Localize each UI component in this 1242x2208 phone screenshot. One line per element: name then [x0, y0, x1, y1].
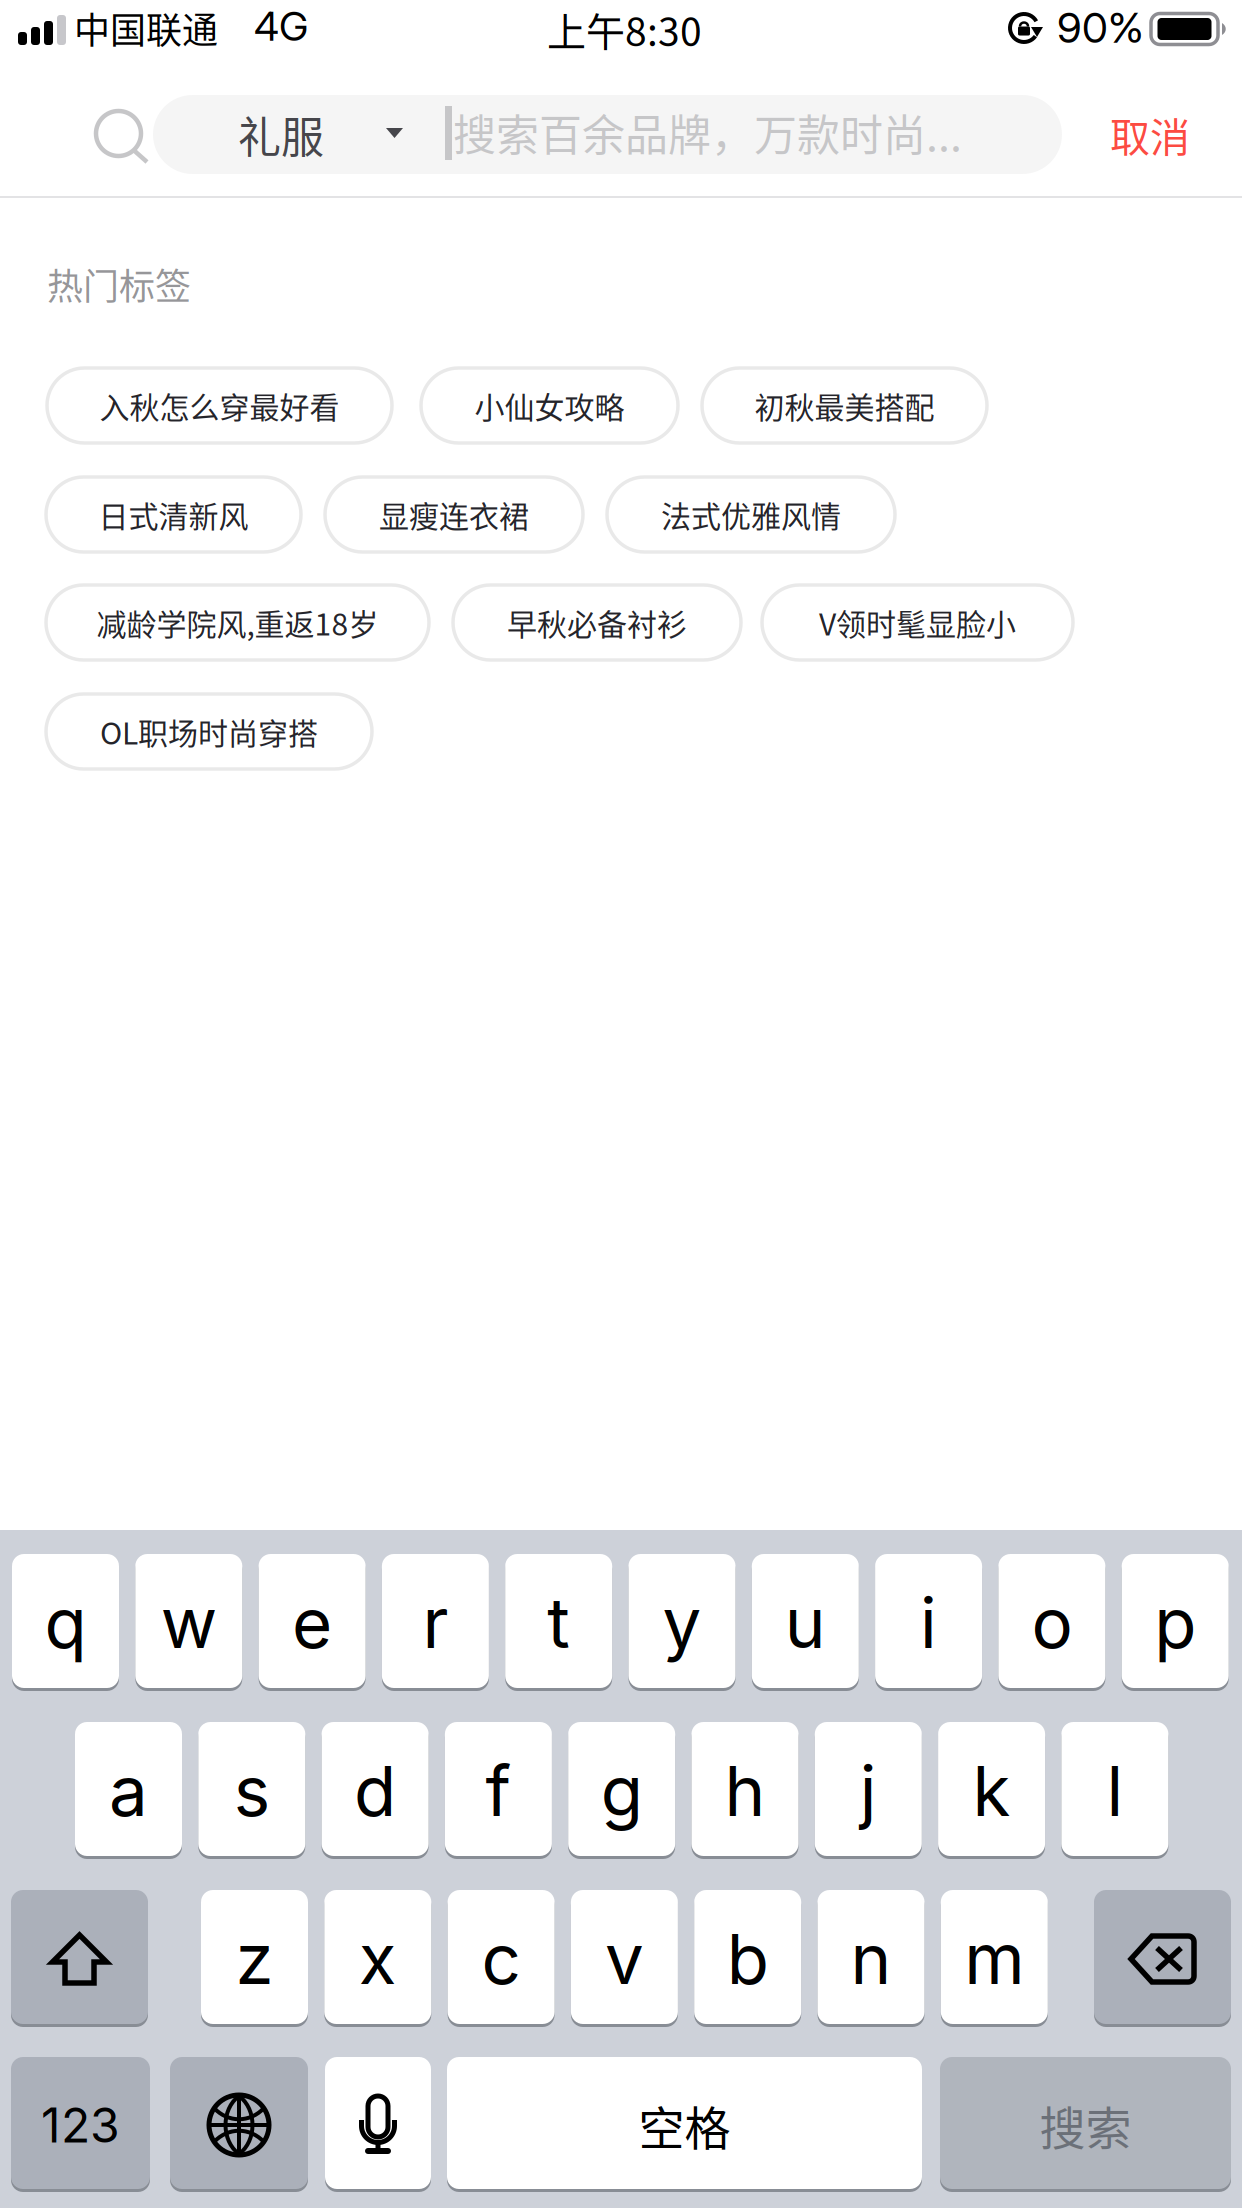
button[interactable]: Dictation [325, 2057, 431, 2193]
button[interactable]: x [324, 1890, 431, 2028]
button[interactable]: g [568, 1722, 675, 1860]
staticText: l [1106, 1749, 1123, 1833]
staticText: s [234, 1749, 270, 1833]
staticText: 初秋最美搭配 [754, 384, 934, 427]
button[interactable]: 显瘦连衣裙 [325, 477, 583, 552]
staticText: 显瘦连衣裙 [379, 493, 529, 536]
staticText: 小仙女攻略 [474, 384, 624, 427]
staticText: c [482, 1917, 521, 2001]
staticText: o [1031, 1581, 1072, 1665]
button[interactable]: 搜索 [940, 2057, 1231, 2193]
button[interactable]: 日式清新风 [46, 477, 301, 552]
button[interactable]: b [694, 1890, 801, 2028]
button[interactable]: 早秋必备衬衫 [453, 585, 741, 660]
staticText: 取消 [1110, 105, 1190, 163]
button[interactable]: a [75, 1722, 182, 1860]
staticText: 90% [1057, 2, 1144, 53]
button[interactable]: s [198, 1722, 305, 1860]
button[interactable]: y [628, 1554, 735, 1692]
button[interactable]: c [448, 1890, 555, 2028]
staticText: 减龄学院风,重返18岁 [96, 601, 378, 644]
button[interactable]: 小仙女攻略 [421, 368, 678, 443]
button[interactable]: o [998, 1554, 1105, 1692]
staticText: 热门标签 [47, 258, 191, 310]
button[interactable]: r [382, 1554, 489, 1692]
button[interactable]: Search [96, 107, 158, 177]
button[interactable]: 入秋怎么穿最好看 [47, 368, 392, 443]
staticText: 搜索百余品牌，万款时尚... [453, 101, 962, 163]
staticText: 空格 [638, 2092, 730, 2158]
staticText: e [292, 1581, 332, 1665]
staticText: n [850, 1917, 891, 2001]
staticText: w [161, 1581, 217, 1665]
button[interactable]: 初秋最美搭配 [702, 368, 987, 443]
staticText: b [727, 1917, 769, 2001]
staticText: r [422, 1581, 448, 1665]
staticText: x [359, 1917, 397, 2001]
staticText: 法式优雅风情 [661, 493, 841, 536]
button[interactable]: 礼服 [153, 95, 1062, 174]
button[interactable]: t [505, 1554, 612, 1692]
staticText: 搜索 [1039, 2092, 1131, 2158]
staticText: v [605, 1917, 644, 2001]
button[interactable]: OL职场时尚穿搭 [46, 694, 372, 769]
staticText: a [109, 1749, 148, 1833]
staticText: m [964, 1917, 1024, 2001]
button[interactable]: m [941, 1890, 1048, 2028]
button[interactable]: d [322, 1722, 429, 1860]
button[interactable]: h [691, 1722, 798, 1860]
button[interactable]: n [817, 1890, 924, 2028]
staticText: q [44, 1581, 86, 1665]
button[interactable]: z [201, 1890, 308, 2028]
staticText: OL职场时尚穿搭 [100, 710, 318, 753]
staticText: z [235, 1917, 273, 2001]
button[interactable]: k [938, 1722, 1045, 1860]
staticText: u [785, 1581, 826, 1665]
staticText: g [601, 1749, 643, 1833]
button[interactable]: l [1061, 1722, 1168, 1860]
button[interactable]: v [571, 1890, 678, 2028]
button[interactable]: j [815, 1722, 922, 1860]
button[interactable]: 123 [11, 2057, 150, 2193]
staticText: d [354, 1749, 396, 1833]
staticText: 中国联通 [74, 2, 218, 54]
button[interactable]: p [1122, 1554, 1229, 1692]
button[interactable]: Next keyboard [170, 2057, 308, 2193]
staticText: 4G [254, 2, 308, 50]
staticText: t [547, 1581, 570, 1665]
staticText: p [1154, 1581, 1196, 1665]
button[interactable]: 减龄学院风,重返18岁 [46, 585, 429, 660]
button[interactable]: q [12, 1554, 119, 1692]
button[interactable]: Shift [11, 1890, 148, 2028]
staticText: 123 [41, 2096, 120, 2154]
staticText: 入秋怎么穿最好看 [99, 384, 339, 427]
staticText: k [973, 1749, 1011, 1833]
button[interactable]: u [752, 1554, 859, 1692]
staticText: V领时髦显脸小 [819, 601, 1016, 644]
button[interactable]: w [135, 1554, 242, 1692]
button[interactable]: f [445, 1722, 552, 1860]
staticText: j [860, 1749, 877, 1833]
staticText: h [724, 1749, 765, 1833]
button[interactable]: i [875, 1554, 982, 1692]
button[interactable]: V领时髦显脸小 [762, 585, 1073, 660]
button[interactable]: 空格 [447, 2057, 922, 2193]
button[interactable]: 法式优雅风情 [607, 477, 895, 552]
staticText: 早秋必备衬衫 [507, 601, 687, 644]
staticText: y [662, 1581, 701, 1665]
button[interactable]: Delete [1094, 1890, 1231, 2028]
button[interactable]: e [259, 1554, 366, 1692]
button[interactable]: 取消 [1084, 95, 1216, 174]
staticText: i [920, 1581, 937, 1665]
staticText: f [485, 1749, 511, 1833]
staticText: 礼服 [238, 103, 324, 165]
staticText: 上午8:30 [547, 1, 702, 57]
staticText: 日式清新风 [98, 493, 248, 536]
